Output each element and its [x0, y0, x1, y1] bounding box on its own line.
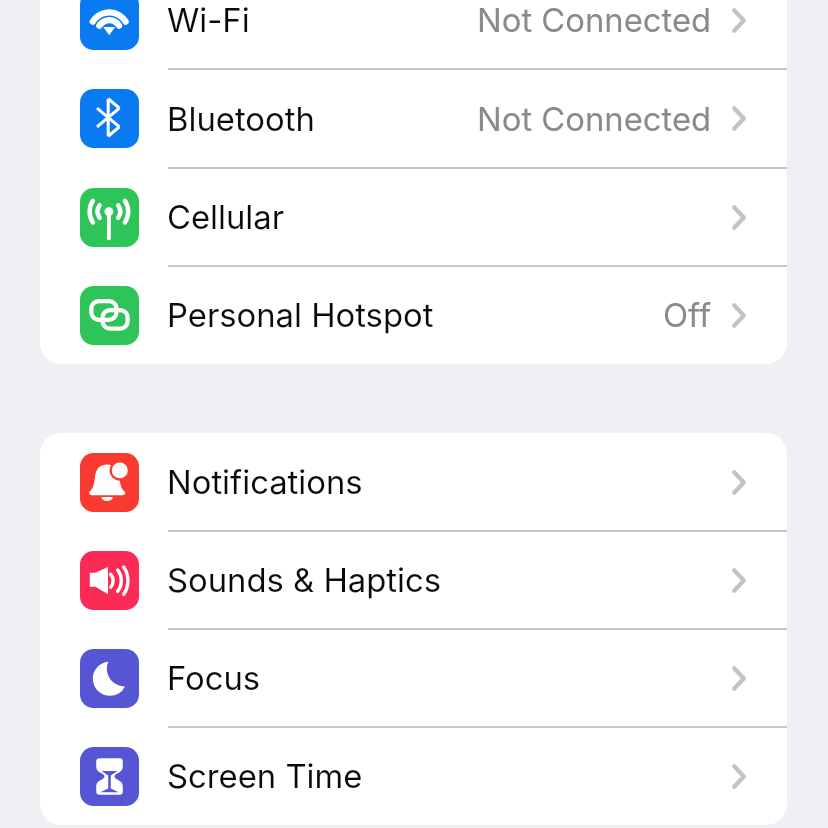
staticText: Not Connected — [477, 0, 712, 40]
staticText: Personal Hotspot — [167, 295, 434, 335]
staticText: Focus — [167, 658, 261, 698]
staticText: Notifications — [167, 462, 363, 502]
button[interactable]: Sounds & Haptics — [40, 531, 787, 629]
staticText: Sounds & Haptics — [167, 560, 442, 600]
staticText: Off — [663, 295, 712, 335]
staticText: Screen Time — [167, 756, 363, 796]
button[interactable]: Focus — [40, 629, 787, 727]
button[interactable]: Wi-Fi — [40, 0, 787, 69]
staticText: Wi-Fi — [167, 0, 250, 40]
button[interactable]: Cellular — [40, 168, 787, 266]
staticText: Bluetooth — [167, 99, 315, 139]
button[interactable]: Screen Time — [40, 727, 787, 825]
button[interactable]: Personal Hotspot — [40, 266, 787, 364]
staticText: Not Connected — [477, 99, 712, 139]
button[interactable]: Notifications — [40, 433, 787, 531]
staticText: Cellular — [167, 197, 285, 237]
button[interactable]: Bluetooth — [40, 69, 787, 168]
